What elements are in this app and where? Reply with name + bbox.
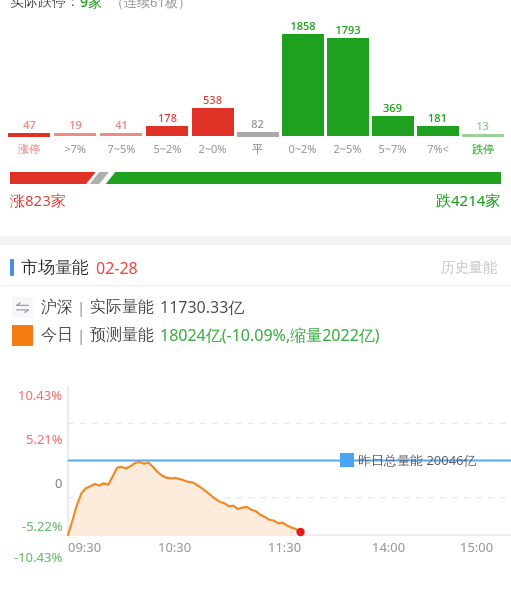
staticText: 02-28 (96, 257, 138, 279)
staticText: 5~7% (378, 141, 407, 156)
button[interactable]: 181 (415, 110, 460, 160)
staticText: 预测量能 (90, 325, 154, 345)
button[interactable]: 369 (370, 100, 415, 160)
staticText: -10.43% (14, 548, 63, 566)
staticText: 10.43% (18, 386, 63, 404)
button[interactable]: 178 (144, 110, 190, 160)
staticText: 47 (23, 117, 36, 132)
staticText: 跌4214家 (436, 190, 501, 210)
staticText: 历史量能 (441, 259, 497, 277)
staticText: -5.22% (22, 517, 63, 535)
staticText: 19 (69, 117, 82, 132)
staticText: 7~5% (107, 141, 136, 156)
staticText: 15:00 (460, 538, 494, 556)
button[interactable]: 1858 (280, 18, 325, 160)
staticText: （连续61板） (111, 0, 191, 11)
staticText: 平 (252, 142, 263, 156)
staticText: 实际量能 (90, 297, 154, 317)
button[interactable]: 538 (190, 92, 235, 160)
button[interactable]: 13 (460, 118, 505, 160)
button[interactable]: Exchange toggle (12, 297, 33, 318)
staticText: 09:30 (68, 538, 102, 556)
staticText: 沪深 (41, 297, 73, 317)
staticText: 18024亿(-10.09%,缩量2022亿) (160, 324, 380, 346)
staticText: 市场量能 (21, 257, 89, 278)
staticText: 369 (383, 100, 402, 115)
button[interactable]: 47 (6, 117, 52, 160)
button[interactable]: 41 (98, 117, 144, 160)
staticText: 今日 (41, 325, 73, 345)
button[interactable]: 1793 (325, 22, 370, 160)
staticText: 2~5% (333, 141, 362, 156)
staticText: | (73, 325, 90, 345)
staticText: 9家 (80, 0, 103, 11)
staticText: 41 (115, 117, 128, 132)
staticText: 11730.33亿 (160, 296, 245, 318)
staticText: 538 (203, 92, 222, 107)
staticText: 实际跌停： (10, 0, 80, 11)
staticText: 11:30 (268, 538, 302, 556)
staticText: 5~2% (153, 141, 182, 156)
staticText: 5.21% (26, 430, 63, 448)
staticText: 0~2% (288, 141, 317, 156)
staticText: 2~0% (198, 141, 227, 156)
staticText: 涨823家 (10, 190, 66, 210)
staticText: 13 (476, 118, 489, 133)
button[interactable]: 19 (52, 117, 98, 160)
staticText: 14:00 (372, 538, 406, 556)
staticText: | (73, 297, 90, 317)
button[interactable]: 82 (235, 116, 280, 160)
staticText: 7%< (427, 141, 449, 156)
staticText: >7% (64, 141, 86, 156)
staticText: 178 (158, 110, 177, 125)
button[interactable]: 历史量能 (437, 255, 501, 281)
staticText: 1858 (290, 18, 316, 33)
staticText: 1793 (335, 22, 361, 37)
staticText: 10:30 (158, 538, 192, 556)
staticText: 涨停 (18, 142, 40, 156)
staticText: 82 (251, 116, 264, 131)
staticText: 昨日总量能 20046亿 (358, 451, 477, 469)
staticText: 0 (55, 474, 63, 492)
staticText: 跌停 (472, 142, 494, 156)
staticText: 181 (428, 110, 447, 125)
button[interactable] (10, 172, 501, 184)
